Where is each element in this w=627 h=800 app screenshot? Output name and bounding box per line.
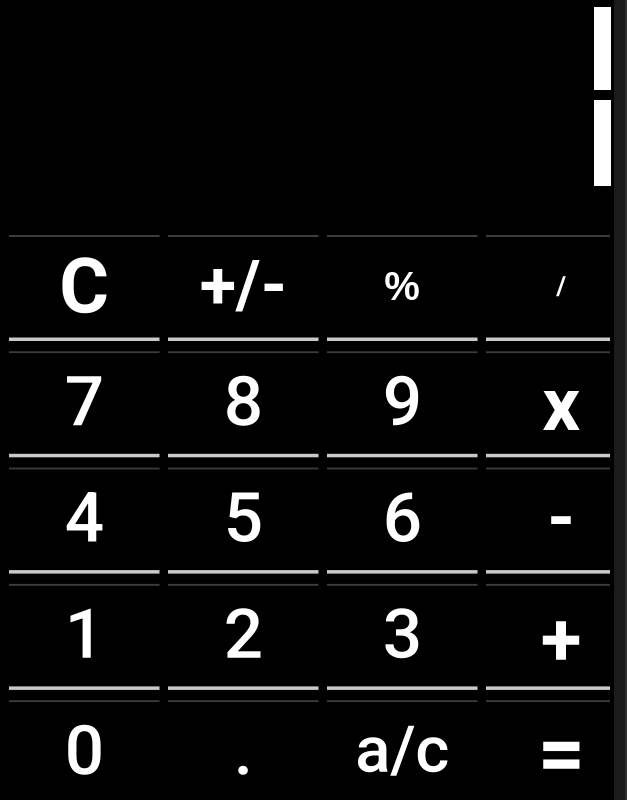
staticText: - [547, 476, 575, 559]
staticText: 3 [383, 593, 422, 675]
staticText: + [541, 595, 582, 683]
staticText: % [384, 264, 420, 309]
staticText: 5 [224, 477, 263, 558]
button[interactable]: 5 [168, 468, 318, 574]
staticText: 0 [65, 710, 104, 791]
button[interactable]: a/c [327, 700, 477, 800]
staticText: / [556, 270, 566, 301]
button[interactable]: % [327, 235, 477, 341]
staticText: 6 [383, 477, 422, 558]
button[interactable]: 1 [9, 584, 159, 690]
button[interactable]: C [9, 235, 159, 341]
button[interactable]: + [486, 584, 627, 690]
button[interactable]: / [486, 235, 627, 341]
button[interactable]: . [168, 700, 318, 800]
button[interactable]: 3 [327, 584, 477, 690]
button[interactable]: 0 [9, 700, 159, 800]
button[interactable]: 6 [327, 468, 477, 574]
staticText: +/- [200, 246, 287, 324]
staticText: . [234, 710, 253, 791]
staticText: 4 [65, 477, 104, 558]
button[interactable]: +/- [168, 235, 318, 341]
staticText: 7 [65, 361, 104, 442]
staticText: x [542, 361, 580, 448]
staticText: C [59, 242, 109, 331]
button[interactable]: - [486, 468, 627, 574]
button[interactable]: = [486, 700, 627, 800]
staticText: a/c [355, 711, 449, 788]
staticText: 9 [383, 361, 422, 442]
staticText: 1 [65, 593, 104, 675]
button[interactable]: 4 [9, 468, 159, 574]
button[interactable]: 8 [168, 351, 318, 457]
staticText: 2 [224, 593, 263, 675]
staticText: 8 [224, 361, 263, 442]
button[interactable]: 7 [9, 351, 159, 457]
button[interactable]: 9 [327, 351, 477, 457]
staticText: = [538, 705, 585, 800]
button[interactable]: 2 [168, 584, 318, 690]
button[interactable]: x [486, 351, 627, 457]
